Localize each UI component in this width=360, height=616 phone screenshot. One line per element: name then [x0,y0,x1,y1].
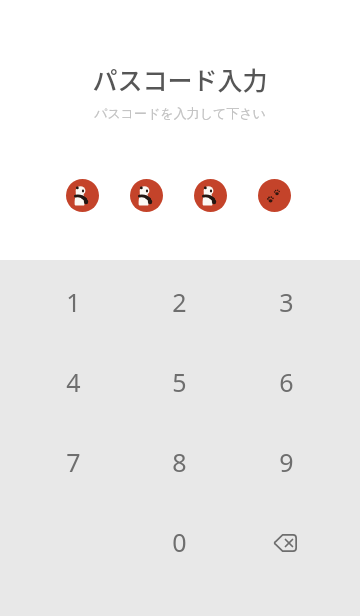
button[interactable]: 8 [126,422,233,502]
staticText: 7 [66,445,81,479]
button[interactable]: 1 [20,262,126,342]
button[interactable]: 4 [20,342,126,422]
button[interactable]: 5 [126,342,233,422]
button[interactable]: 3 [233,262,340,342]
button[interactable]: 2 [126,262,233,342]
staticText: 8 [172,445,187,479]
staticText: 5 [172,365,187,399]
button[interactable]: 9 [233,422,340,502]
button[interactable]: Delete [233,502,340,582]
staticText: 0 [172,525,187,559]
staticText: 4 [66,365,81,399]
staticText: 6 [279,365,294,399]
button[interactable]: 6 [233,342,340,422]
button[interactable]: 0 [126,502,233,582]
staticText: 9 [279,445,294,479]
other: Passcode: 3 of 4 digits entered [0,179,358,212]
staticText: 2 [172,285,187,319]
staticText: パスコードを入力して下さい [0,105,360,121]
staticText: パスコード入力 [0,61,360,97]
staticText: 1 [66,285,81,319]
button[interactable]: 7 [20,422,126,502]
staticText: 3 [279,285,294,319]
